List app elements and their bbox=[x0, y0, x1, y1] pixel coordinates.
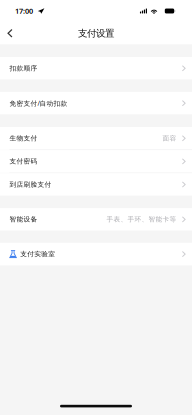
staticText: 支付密码 bbox=[9, 157, 37, 166]
button[interactable]: 扣款顺序 bbox=[0, 57, 192, 80]
staticText: 17:00 bbox=[15, 6, 33, 16]
staticText: 智能设备 bbox=[9, 215, 37, 224]
button[interactable]: 智能设备 bbox=[0, 208, 192, 231]
button[interactable]: 免密支付/自动扣款 bbox=[0, 92, 192, 114]
staticText: 支付实验室 bbox=[20, 250, 55, 258]
button[interactable]: 支付实验室 bbox=[0, 243, 192, 265]
button[interactable]: Back bbox=[0, 22, 20, 44]
staticText: 到店刷脸支付 bbox=[9, 180, 51, 189]
button[interactable]: 生物支付 bbox=[0, 127, 192, 150]
staticText: 手表、手环、智能卡等 bbox=[106, 215, 176, 224]
button[interactable]: 支付密码 bbox=[0, 150, 192, 173]
staticText: 面容 bbox=[162, 134, 176, 142]
staticText: 扣款顺序 bbox=[9, 64, 37, 72]
staticText: 免密支付/自动扣款 bbox=[9, 99, 67, 108]
staticText: 支付设置 bbox=[78, 27, 114, 39]
staticText: 生物支付 bbox=[9, 134, 37, 142]
button[interactable]: 到店刷脸支付 bbox=[0, 173, 192, 196]
